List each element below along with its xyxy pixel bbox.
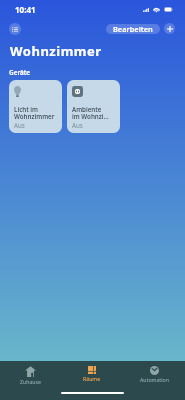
button[interactable]: Automation — [123, 361, 185, 392]
button[interactable]: Zuhause — [0, 361, 61, 392]
staticText: Aus — [14, 121, 25, 129]
staticText: Geräte — [9, 68, 31, 77]
staticText: Aus — [72, 121, 83, 129]
staticText: Licht im Wohnzimmer — [14, 105, 55, 121]
button[interactable]: Menu — [9, 23, 21, 35]
button[interactable]: Licht im Wohnzimmer — [9, 80, 62, 133]
button[interactable]: Add — [164, 23, 175, 34]
staticText: Zuhause — [20, 378, 41, 385]
staticText: 10:41 — [15, 4, 36, 15]
button[interactable]: Ambiente im Wohnzi… — [67, 80, 120, 133]
button[interactable]: Bearbeiten — [106, 24, 160, 34]
staticText: Automation — [140, 376, 169, 383]
staticText: Bearbeiten — [113, 24, 153, 34]
staticText: Räume — [83, 375, 101, 382]
staticText: Wohnzimmer — [10, 42, 102, 60]
staticText: Ambiente im Wohnzi… — [72, 105, 109, 121]
button[interactable]: Räume — [61, 361, 123, 392]
